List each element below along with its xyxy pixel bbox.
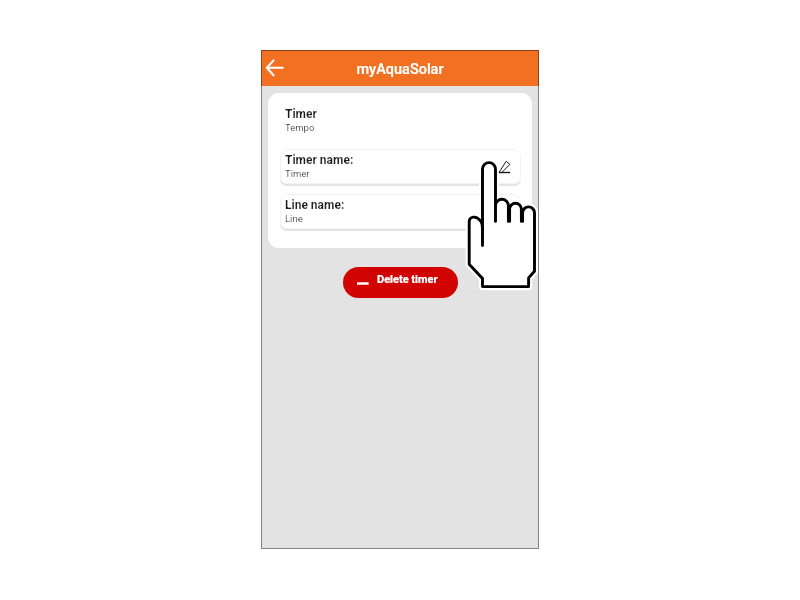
staticText: Line name: <box>285 198 345 212</box>
button[interactable]: Timer <box>278 100 532 132</box>
staticText: Tempo <box>285 122 315 133</box>
button[interactable]: Delete timer <box>343 267 458 298</box>
staticText: Timer <box>285 168 310 179</box>
staticText: Timer name: <box>285 153 354 167</box>
button[interactable]: Timer name: <box>280 149 521 184</box>
staticText: Delete timer <box>377 273 438 286</box>
staticText: Timer <box>285 107 317 121</box>
button[interactable]: Line name: <box>280 194 521 229</box>
staticText: myAquaSolar <box>356 61 444 78</box>
button[interactable]: Back <box>262 53 290 83</box>
staticText: Line <box>285 213 303 224</box>
